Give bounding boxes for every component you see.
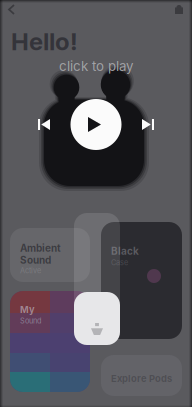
- staticText: Sound: [20, 254, 51, 266]
- button[interactable]: Explore Pods: [101, 355, 182, 396]
- button[interactable]: Ambient: [10, 228, 90, 282]
- staticText: Ambient: [20, 242, 61, 254]
- staticText: Hello!: [11, 27, 78, 56]
- staticText: Explore Pods: [111, 373, 172, 384]
- button[interactable]: Shopping bag: [164, 0, 192, 21]
- button[interactable]: Black: [101, 222, 182, 339]
- button[interactable]: Next track: [135, 112, 161, 137]
- staticText: Black: [111, 245, 139, 257]
- staticText: Case: [111, 258, 128, 267]
- staticText: My: [20, 304, 35, 315]
- staticText: click to play: [59, 58, 133, 74]
- staticText: Active: [20, 266, 41, 275]
- button[interactable]: Back: [0, 0, 25, 21]
- staticText: Sound: [20, 316, 41, 325]
- button[interactable]: My: [10, 291, 90, 392]
- button[interactable]: Play: [70, 99, 121, 150]
- button[interactable]: Previous track: [31, 112, 57, 137]
